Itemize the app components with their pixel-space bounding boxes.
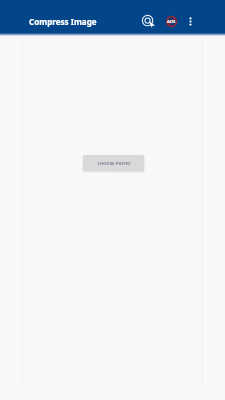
button[interactable]: Select area bbox=[138, 11, 159, 32]
button[interactable]: CHOOSE PHOTO bbox=[83, 155, 144, 171]
staticText: CHOOSE PHOTO bbox=[97, 161, 131, 166]
button[interactable]: Remove ads bbox=[159, 11, 180, 32]
staticText: ADS bbox=[167, 19, 176, 25]
staticText: Compress Image bbox=[29, 16, 97, 27]
button[interactable]: More options bbox=[180, 11, 201, 32]
